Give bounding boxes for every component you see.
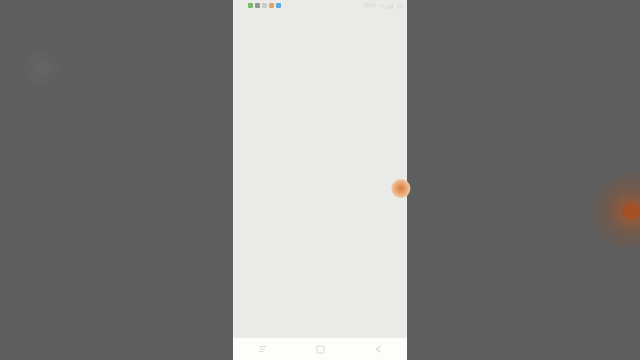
button[interactable]: Floating action button (398, 179, 407, 198)
button[interactable]: Home (291, 338, 349, 360)
staticText: 10:24 (363, 2, 376, 9)
button[interactable]: Recent apps (233, 338, 291, 360)
